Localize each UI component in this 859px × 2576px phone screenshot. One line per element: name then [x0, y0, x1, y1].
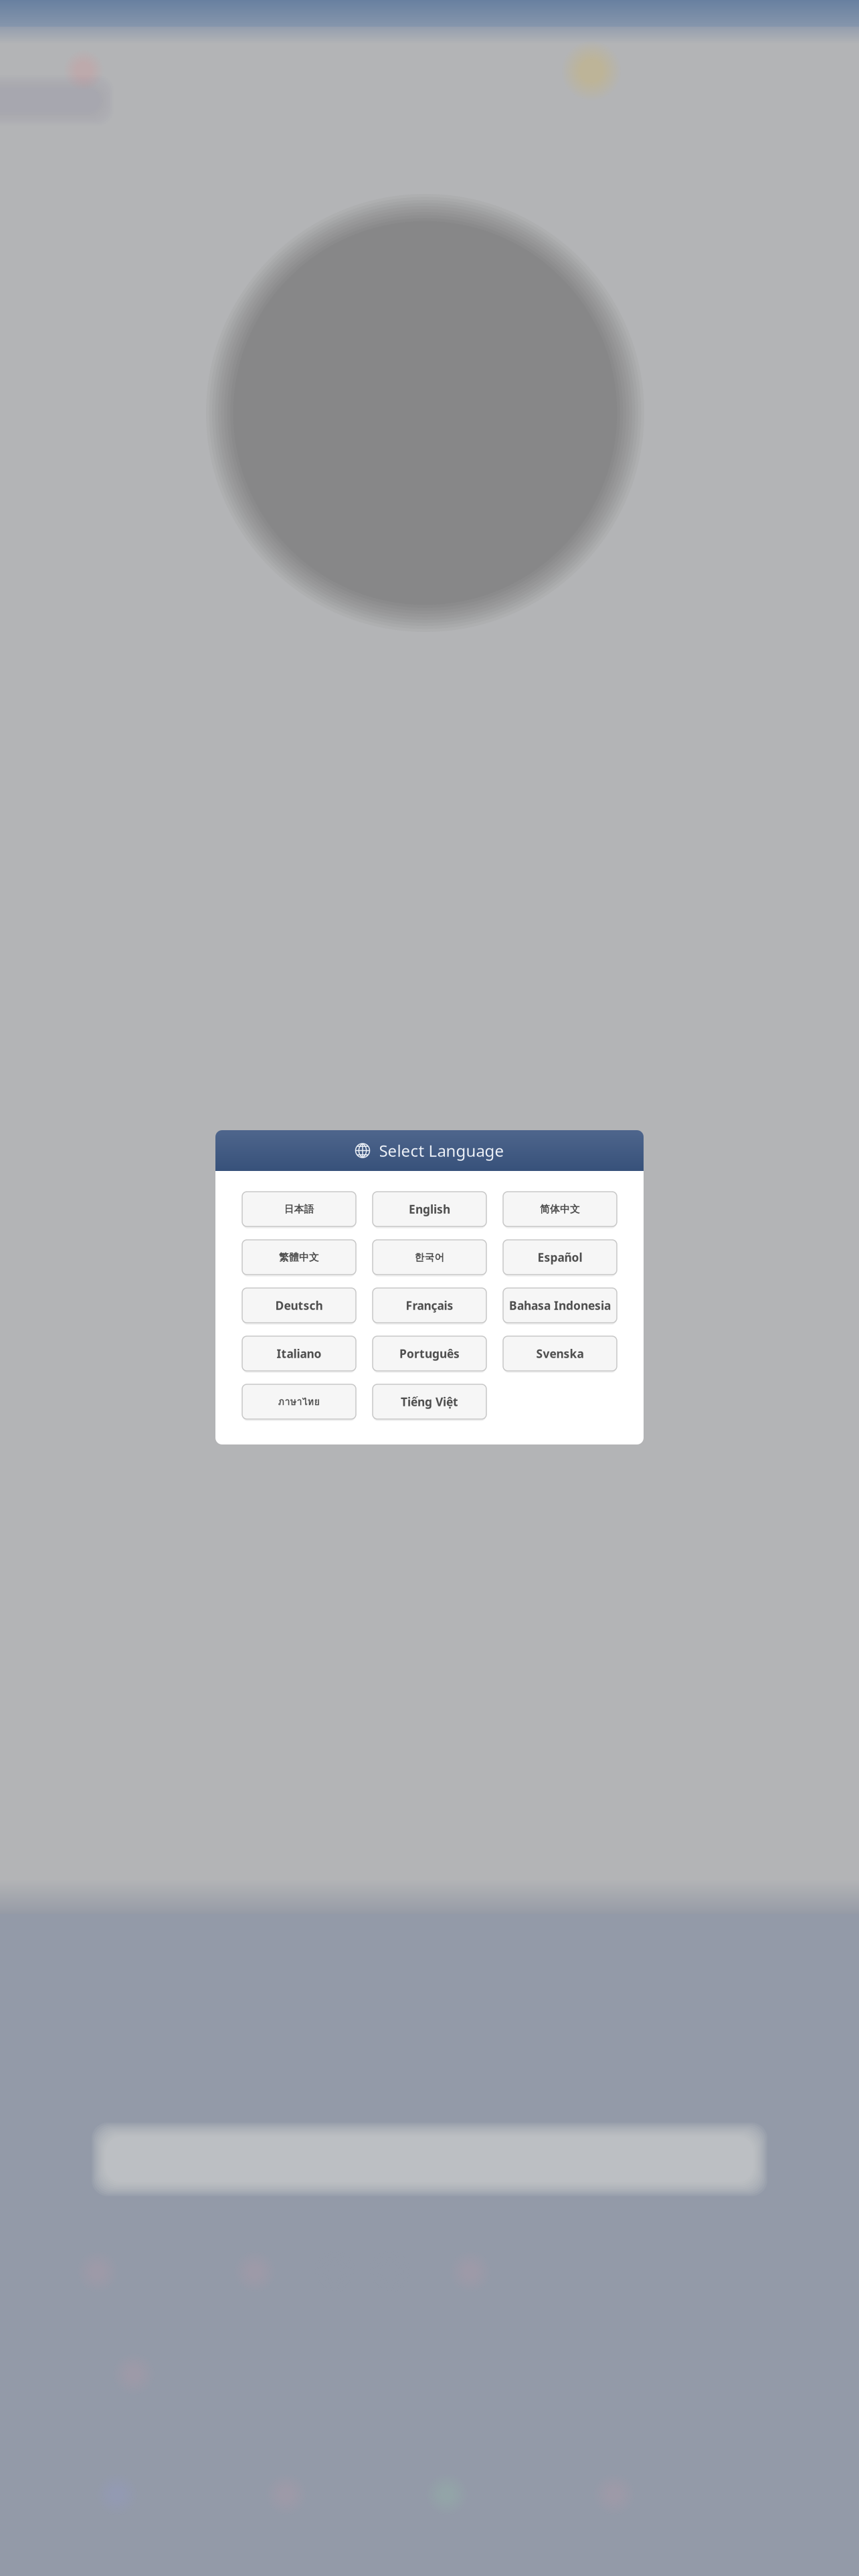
- staticText: 日本語: [284, 1203, 314, 1215]
- staticText: Bahasa Indonesia: [509, 1298, 611, 1313]
- button[interactable]: Português: [373, 1336, 486, 1373]
- button[interactable]: 한국어: [373, 1240, 486, 1277]
- staticText: 简体中文: [540, 1203, 580, 1215]
- button[interactable]: Français: [373, 1288, 486, 1325]
- button[interactable]: Español: [503, 1240, 617, 1277]
- button[interactable]: 日本語: [242, 1192, 356, 1228]
- staticText: ภาษาไทย: [278, 1394, 320, 1409]
- staticText: Tiếng Việt: [401, 1394, 458, 1409]
- staticText: Italiano: [277, 1346, 321, 1361]
- staticText: 한국어: [414, 1251, 445, 1263]
- staticText: Select Language: [379, 1140, 504, 1161]
- button[interactable]: 繁體中文: [242, 1240, 356, 1277]
- button[interactable]: Deutsch: [242, 1288, 356, 1325]
- staticText: Svenska: [536, 1346, 584, 1361]
- button[interactable]: Svenska: [503, 1336, 617, 1373]
- staticText: Español: [538, 1250, 582, 1265]
- button[interactable]: ภาษาไทย: [242, 1384, 356, 1421]
- staticText: Français: [406, 1298, 453, 1313]
- button[interactable]: Tiếng Việt: [373, 1384, 486, 1421]
- button[interactable]: English: [373, 1192, 486, 1228]
- staticText: Português: [399, 1346, 460, 1361]
- button[interactable]: Italiano: [242, 1336, 356, 1373]
- staticText: English: [409, 1201, 450, 1217]
- staticText: 繁體中文: [279, 1251, 319, 1263]
- button[interactable]: 简体中文: [503, 1192, 617, 1228]
- staticText: Deutsch: [275, 1298, 323, 1313]
- button[interactable]: Bahasa Indonesia: [503, 1288, 617, 1325]
